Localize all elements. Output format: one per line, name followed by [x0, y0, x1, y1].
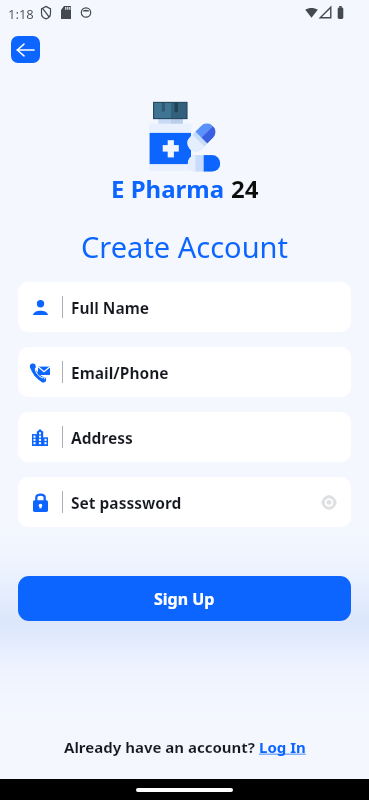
- button[interactable]: Full Name: [18, 282, 351, 332]
- button[interactable]: Address: [18, 412, 351, 462]
- staticText: 24: [231, 172, 259, 205]
- staticText: Set passsword: [71, 492, 182, 513]
- staticText: Address: [71, 427, 133, 448]
- staticText: Already have an account?: [64, 737, 259, 757]
- button[interactable]: Sign Up: [18, 576, 351, 621]
- staticText: Create Account: [0, 227, 369, 266]
- staticText: 1:18: [8, 5, 34, 23]
- button[interactable]: Show password: [317, 490, 341, 514]
- button[interactable]: Back: [11, 36, 40, 63]
- staticText: Sign Up: [154, 588, 215, 610]
- button[interactable]: Set passsword: [18, 477, 351, 527]
- staticText: E Pharma: [111, 172, 231, 205]
- button[interactable]: Email/Phone: [18, 347, 351, 397]
- staticText: Email/Phone: [71, 362, 169, 383]
- staticText: Log In: [259, 737, 306, 757]
- button[interactable]: Log In: [259, 737, 306, 757]
- staticText: Full Name: [71, 297, 150, 318]
